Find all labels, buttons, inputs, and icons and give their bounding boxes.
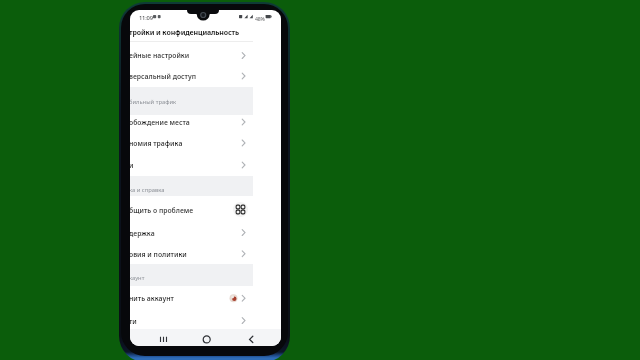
staticText: тройки и конфиденциальность [130,28,240,38]
staticText: 48% [255,15,265,22]
button[interactable]: держка [130,223,281,243]
button[interactable] [240,329,260,346]
button[interactable]: ейные настройки [130,45,281,65]
staticText: номия трафика [130,139,183,148]
button[interactable]: и [130,155,281,175]
button[interactable]: бщить о проблеме [130,200,281,220]
button[interactable]: номия трафика [130,133,281,153]
button[interactable]: овия и политики [130,244,281,264]
staticText: овия и политики [130,250,187,259]
staticText: нить аккаунт [130,294,174,303]
staticText: каунт [130,274,145,282]
button[interactable] [196,329,216,346]
staticText: обождение места [130,118,190,127]
staticText: бильный трафик [130,98,177,106]
staticText: версальный доступ [130,72,196,81]
staticText: ти [130,317,137,326]
staticText: ейные настройки [130,51,190,60]
staticText: и [130,161,134,170]
staticText: ка и справка [130,186,165,194]
staticText: бщить о проблеме [130,206,194,215]
staticText: держка [130,229,155,238]
staticText: 11:09 [139,14,153,22]
button[interactable] [153,329,173,346]
button[interactable]: нить аккаунт [130,288,281,308]
button[interactable]: ти [130,311,281,331]
button[interactable]: обождение места [130,112,281,132]
button[interactable]: версальный доступ [130,66,281,86]
